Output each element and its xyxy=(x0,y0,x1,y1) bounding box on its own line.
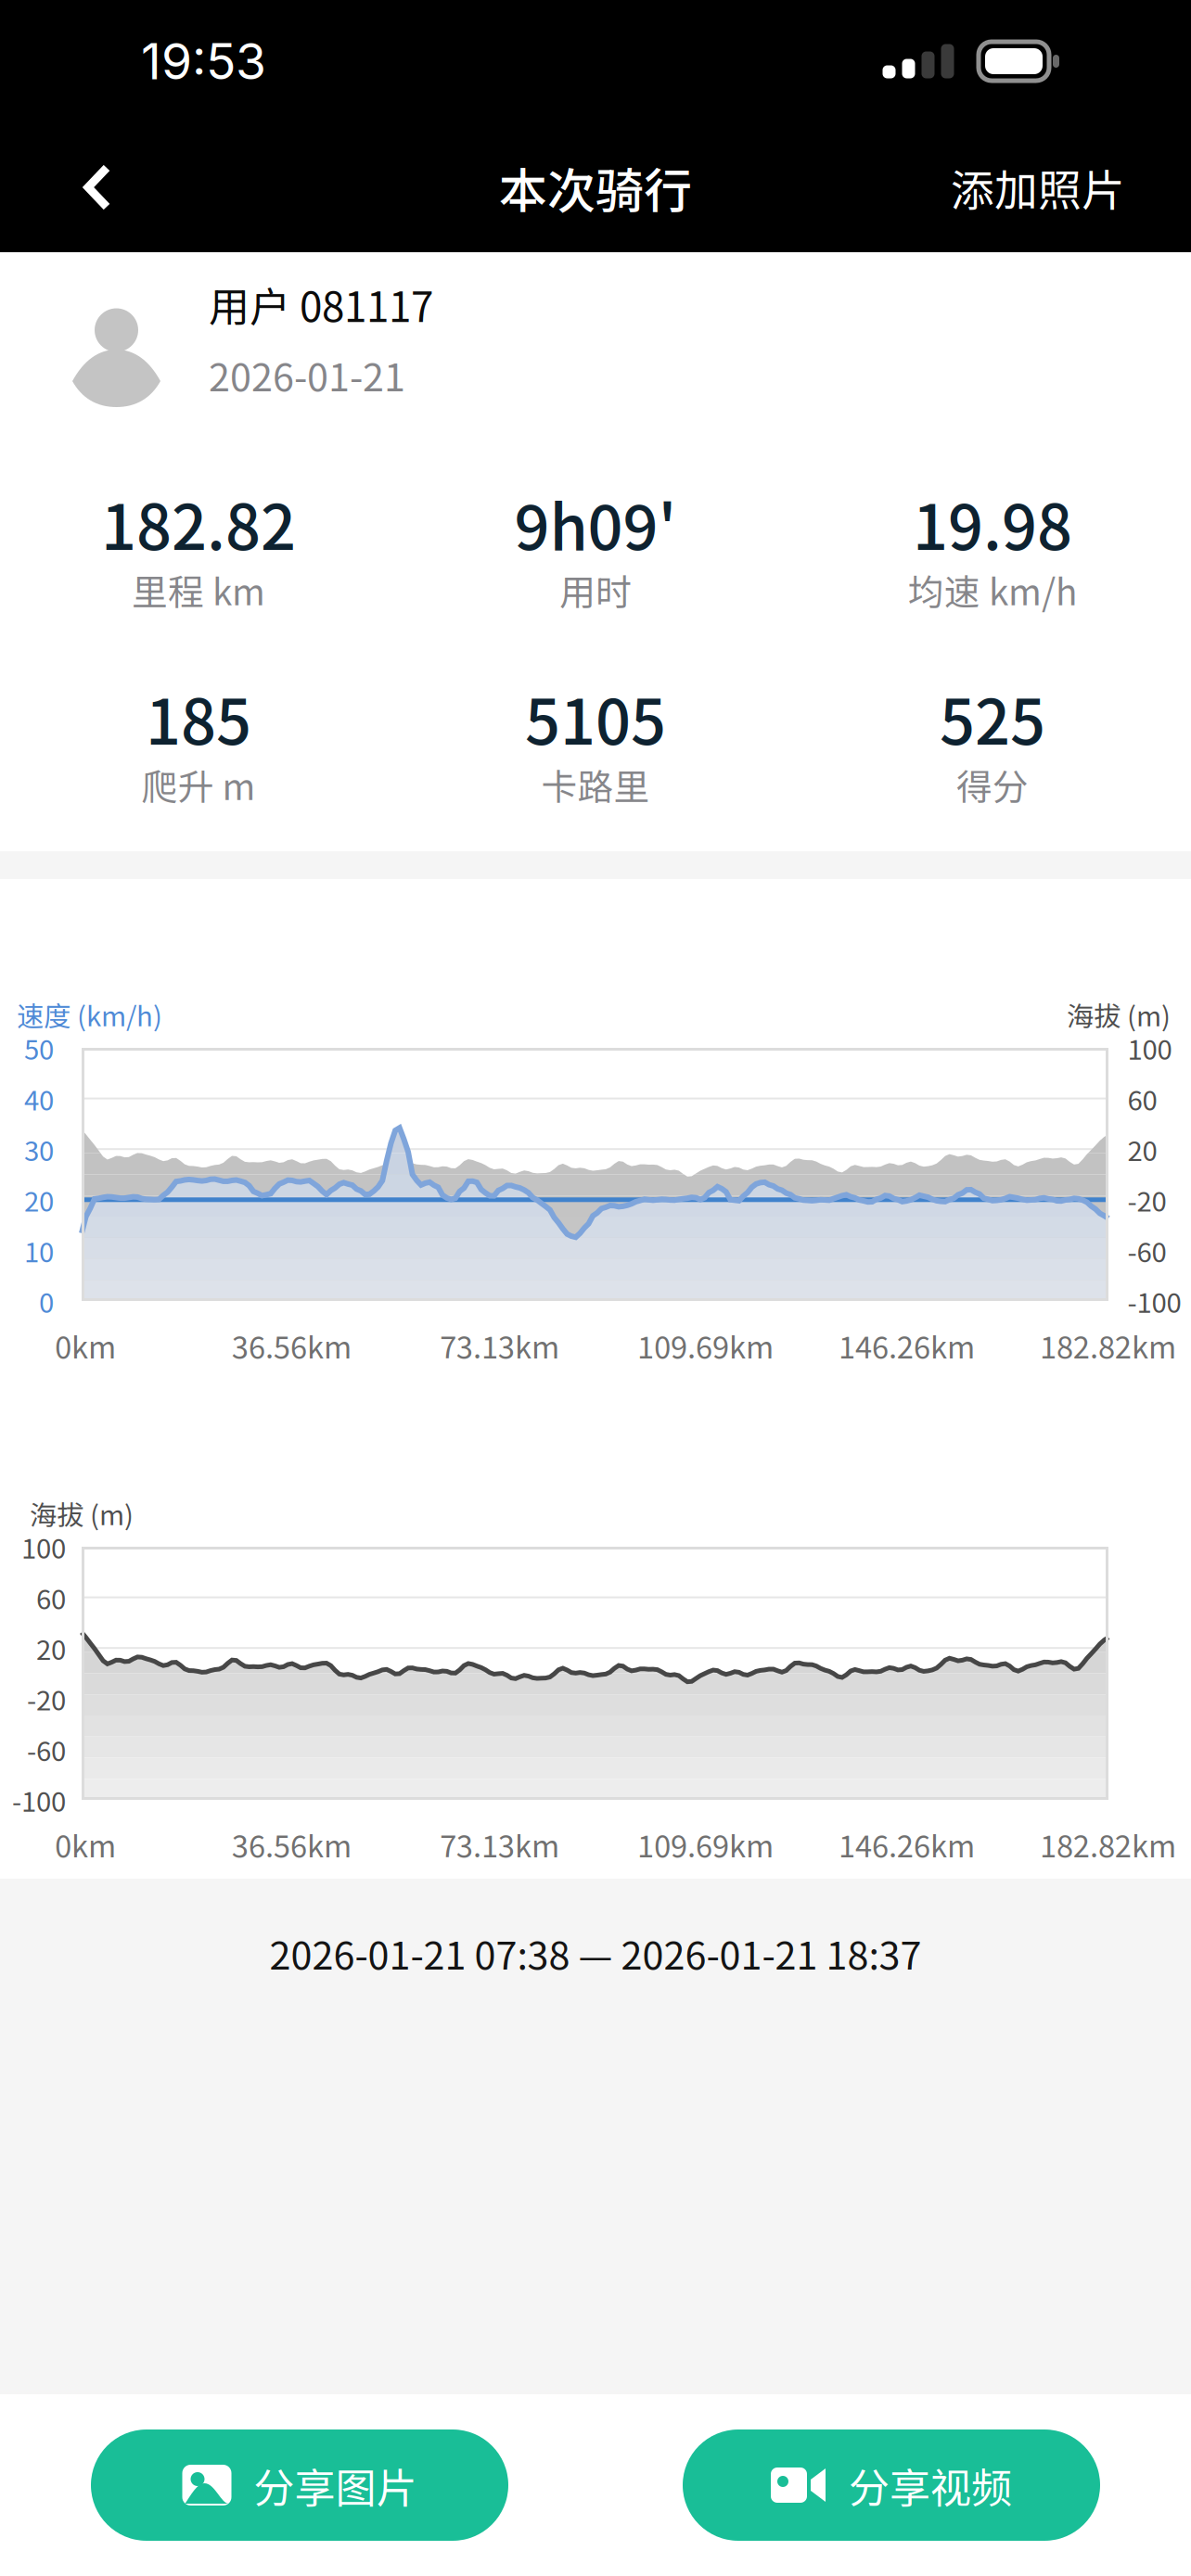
staticText: 20 xyxy=(1127,1129,1157,1169)
staticText: 182.82km xyxy=(1040,1323,1176,1367)
staticText: 30 xyxy=(24,1129,54,1169)
staticText: -20 xyxy=(27,1679,66,1718)
staticText: 用时 xyxy=(559,564,632,616)
staticText: 20 xyxy=(36,1628,66,1668)
staticText: 10 xyxy=(24,1231,54,1270)
staticText: 2026-01-21 xyxy=(209,347,405,402)
staticText: 185 xyxy=(146,673,251,762)
staticText: 速度 (km/h) xyxy=(17,995,162,1034)
staticText: 海拔 (m) xyxy=(1067,995,1171,1034)
staticText: 2026-01-21 07:38 — 2026-01-21 18:37 xyxy=(269,1925,922,1981)
staticText: 爬升 m xyxy=(141,759,256,810)
staticText: 73.13km xyxy=(440,1822,559,1866)
staticText: 添加照片 xyxy=(951,156,1125,219)
staticText: 用户 081117 xyxy=(209,275,433,334)
staticText: 9h09' xyxy=(514,478,677,568)
staticText: 109.69km xyxy=(637,1323,774,1367)
staticText: -100 xyxy=(12,1780,66,1820)
staticText: 182.82km xyxy=(1040,1822,1176,1866)
staticText: 5105 xyxy=(525,673,666,762)
button[interactable]: 返回 xyxy=(46,127,148,248)
staticText: 40 xyxy=(24,1079,54,1118)
staticText: 本次骑行 xyxy=(499,152,692,222)
staticText: -60 xyxy=(27,1730,66,1769)
staticText: -60 xyxy=(1127,1231,1166,1270)
staticText: 146.26km xyxy=(839,1323,975,1367)
staticText: 60 xyxy=(36,1578,66,1617)
staticText: 182.82 xyxy=(101,478,296,568)
button[interactable]: 分享视频 xyxy=(683,2429,1100,2541)
staticText: 50 xyxy=(24,1028,54,1068)
staticText: 0km xyxy=(55,1822,116,1866)
button[interactable]: 添加照片 xyxy=(934,127,1142,248)
staticText: 分享视频 xyxy=(849,2456,1012,2515)
staticText: 109.69km xyxy=(637,1822,774,1866)
staticText: 100 xyxy=(1127,1028,1172,1068)
staticText: 19:53 xyxy=(141,31,266,91)
staticText: 60 xyxy=(1127,1079,1157,1118)
staticText: 里程 km xyxy=(132,564,265,616)
staticText: 均速 km/h xyxy=(908,564,1077,616)
staticText: 0 xyxy=(39,1281,54,1321)
staticText: -20 xyxy=(1127,1180,1166,1219)
staticText: 得分 xyxy=(956,759,1029,810)
staticText: 分享图片 xyxy=(254,2456,417,2515)
staticText: 73.13km xyxy=(440,1323,559,1367)
staticText: 20 xyxy=(24,1180,54,1219)
staticText: 19.98 xyxy=(913,478,1072,568)
staticText: 0km xyxy=(55,1323,116,1367)
button[interactable]: 分享图片 xyxy=(91,2429,508,2541)
staticText: 36.56km xyxy=(232,1822,352,1866)
staticText: 525 xyxy=(940,673,1045,762)
staticText: 100 xyxy=(21,1527,66,1566)
staticText: -100 xyxy=(1127,1281,1181,1321)
staticText: 卡路里 xyxy=(541,759,650,810)
staticText: 36.56km xyxy=(232,1323,352,1367)
staticText: 海拔 (m) xyxy=(30,1494,134,1533)
staticText: 146.26km xyxy=(839,1822,975,1866)
